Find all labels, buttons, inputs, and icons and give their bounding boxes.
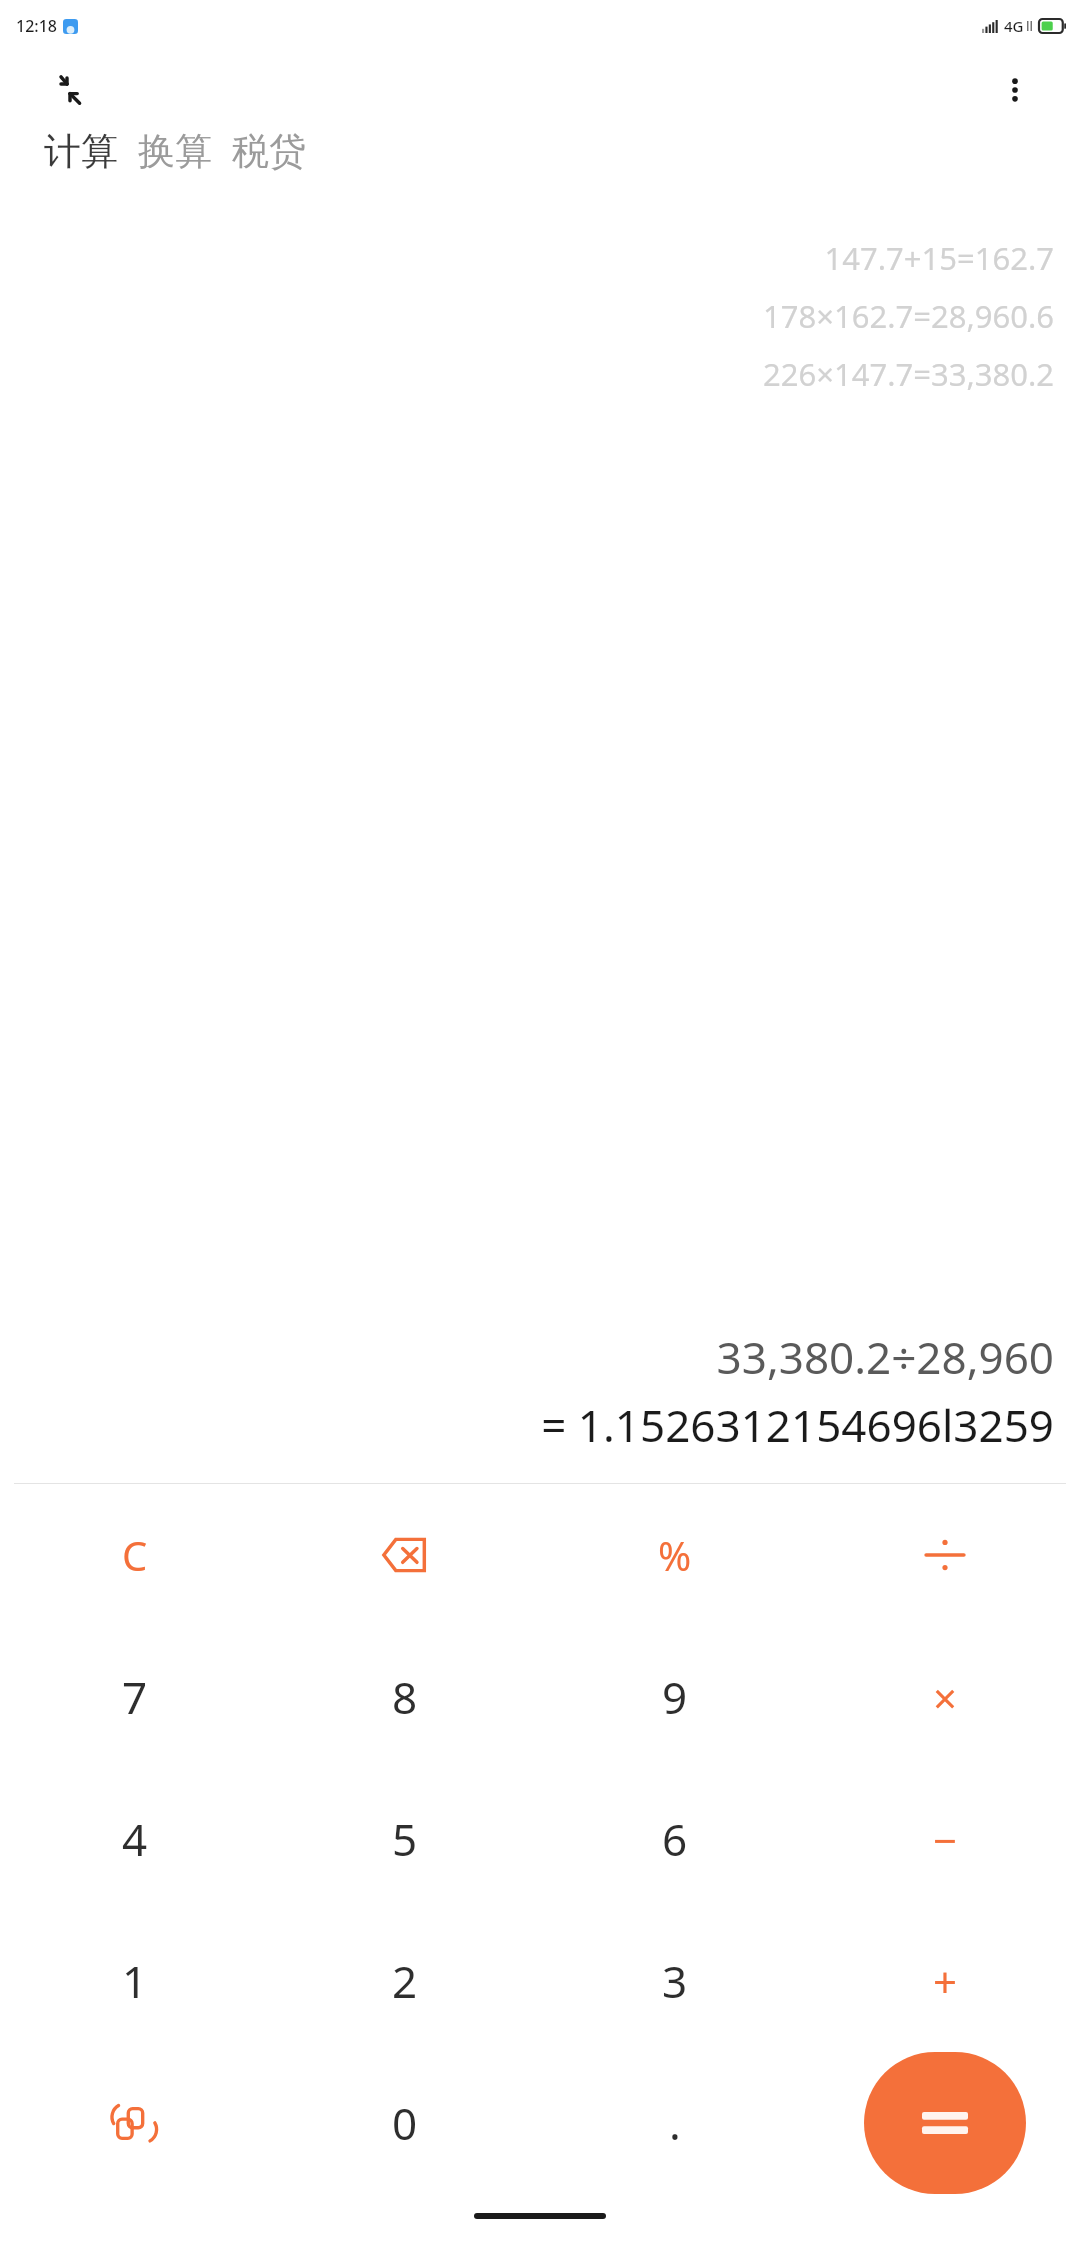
staticText: 9 <box>662 1667 688 1727</box>
staticText: 178×162.7=28,960.6 <box>763 295 1054 337</box>
staticText: = 1.1526312154696l3259 <box>541 1395 1054 1455</box>
button[interactable]: − <box>810 1768 1080 1910</box>
staticText: 2 <box>392 1951 418 2011</box>
staticText: × <box>933 1669 958 1726</box>
staticText: 0 <box>392 2093 418 2153</box>
staticText: 计算 <box>44 128 118 175</box>
staticText: 换算 <box>138 128 212 175</box>
staticText: . <box>669 2093 681 2153</box>
other: Backspace <box>382 1532 428 1578</box>
button[interactable]: 226×147.7=33,380.2 <box>763 353 1054 395</box>
button[interactable]: Divide <box>810 1484 1080 1626</box>
button[interactable]: Equals <box>864 2052 1026 2194</box>
button[interactable]: More options <box>992 67 1038 113</box>
button[interactable]: 5 <box>270 1768 540 1910</box>
button[interactable]: 2 <box>270 1910 540 2052</box>
button[interactable]: 178×162.7=28,960.6 <box>763 295 1054 337</box>
button[interactable]: 6 <box>540 1768 810 1910</box>
staticText: + <box>933 1953 958 2010</box>
button[interactable]: C <box>0 1484 270 1626</box>
button[interactable]: Unit converter <box>0 2052 270 2194</box>
button[interactable]: Collapse <box>44 67 90 113</box>
button[interactable]: + <box>810 1910 1080 2052</box>
other: Divide <box>924 1534 966 1576</box>
staticText: 5 <box>392 1809 418 1869</box>
staticText: 6 <box>662 1809 688 1869</box>
staticText: 12:18 <box>16 15 57 37</box>
staticText: − <box>933 1811 958 1868</box>
button[interactable]: 税贷 <box>222 128 316 175</box>
button[interactable]: 4 <box>0 1768 270 1910</box>
button[interactable]: × <box>810 1626 1080 1768</box>
staticText: 147.7+15=162.7 <box>824 237 1054 279</box>
button[interactable]: 换算 <box>128 128 222 175</box>
button[interactable]: 计算 <box>44 128 128 175</box>
staticText: 税贷 <box>232 128 306 175</box>
staticText: 33,380.2÷28,960 <box>716 1327 1054 1387</box>
button[interactable]: Backspace <box>270 1484 540 1626</box>
button[interactable]: 8 <box>270 1626 540 1768</box>
staticText: 4 <box>122 1809 148 1869</box>
staticText: 3 <box>662 1951 688 2011</box>
button[interactable]: 147.7+15=162.7 <box>824 237 1054 279</box>
button[interactable]: 3 <box>540 1910 810 2052</box>
staticText: 8 <box>392 1667 418 1727</box>
staticText: 4G <box>1004 16 1024 36</box>
button[interactable]: . <box>540 2052 810 2194</box>
button[interactable]: 0 <box>270 2052 540 2194</box>
other: Unit converter <box>111 2099 159 2147</box>
staticText: C <box>122 1528 148 1582</box>
staticText: 7 <box>122 1667 148 1727</box>
button[interactable]: 9 <box>540 1626 810 1768</box>
button[interactable]: % <box>540 1484 810 1626</box>
staticText: 1 <box>122 1951 148 2011</box>
staticText: 226×147.7=33,380.2 <box>763 353 1054 395</box>
button[interactable]: 1 <box>0 1910 270 2052</box>
staticText: % <box>658 1528 692 1582</box>
button[interactable]: 7 <box>0 1626 270 1768</box>
